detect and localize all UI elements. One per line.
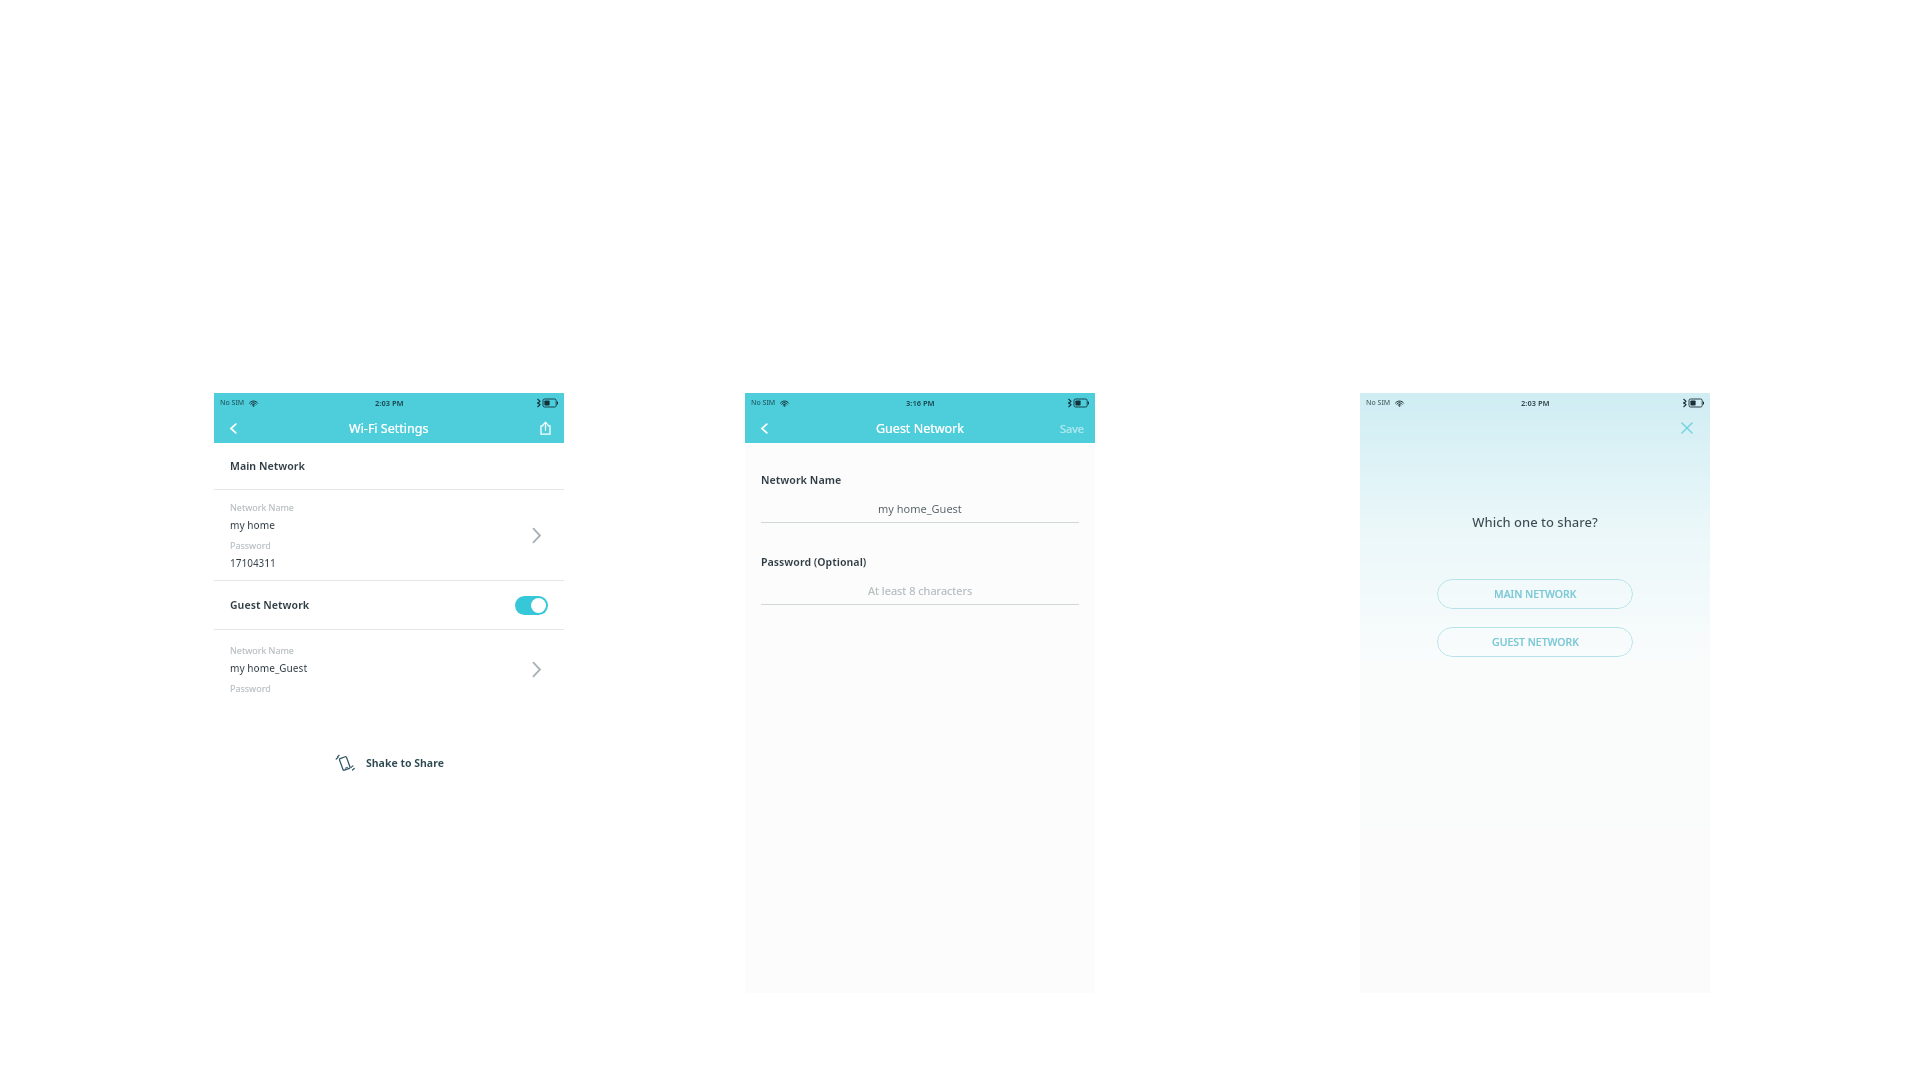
button[interactable]: At least 8 characters [761,583,1079,598]
button[interactable]: Network Name [214,490,564,580]
button[interactable]: Shake to Share [214,746,564,780]
staticText: At least 8 characters [868,583,973,598]
button[interactable]: Network Name [214,630,564,708]
button[interactable]: MAIN NETWORK [1437,579,1633,609]
staticText: Wi-Fi Settings [349,420,429,437]
button[interactable]: Main Network [214,443,564,489]
staticText: 17104311 [230,556,276,570]
staticText: Password [230,539,271,551]
button[interactable]: Back [222,417,244,439]
staticText: Which one to share? [1360,513,1710,531]
staticText: No SIM [220,398,245,408]
staticText: my home_Guest [878,501,962,516]
staticText: 2:03 PM [375,398,404,408]
staticText: Main Network [230,459,306,473]
staticText: Network Name [230,644,294,656]
staticText: Save [1060,421,1085,436]
staticText: No SIM [1366,398,1391,408]
staticText: my home [230,518,275,532]
button[interactable]: Save [1060,421,1085,436]
button[interactable]: my home_Guest [761,501,1079,516]
staticText: Guest Network [230,598,310,612]
staticText: MAIN NETWORK [1494,587,1577,601]
staticText: GUEST NETWORK [1492,635,1579,649]
button[interactable]: Guest Network [214,581,564,629]
staticText: Password (Optional) [761,555,867,569]
staticText: 3:16 PM [906,398,935,408]
staticText: 2:03 PM [1521,398,1550,408]
button[interactable]: Close [1676,417,1698,439]
staticText: Shake to Share [366,756,444,770]
staticText: No SIM [751,398,776,408]
button[interactable]: Back [753,417,775,439]
staticText: Network Name [761,473,842,487]
staticText: my home_Guest [230,661,308,675]
button[interactable]: Guest network on [515,596,548,615]
staticText: Network Name [230,501,294,513]
button[interactable]: GUEST NETWORK [1437,627,1633,657]
staticText: Password [230,682,271,694]
staticText: Guest Network [876,420,964,437]
button[interactable]: Share [534,417,556,439]
